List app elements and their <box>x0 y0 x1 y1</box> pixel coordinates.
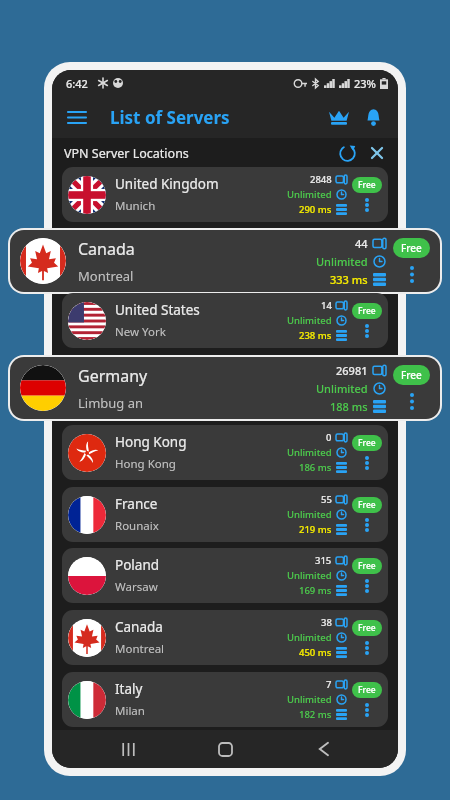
staticText: Germany <box>78 365 148 387</box>
staticText: Montreal <box>115 641 165 657</box>
staticText: Unlimited <box>287 314 332 327</box>
staticText: 38 <box>321 616 332 629</box>
button[interactable]: Home <box>203 730 247 768</box>
staticText: 238 ms <box>299 329 332 342</box>
staticText: Free <box>401 368 422 382</box>
staticText: 23% <box>354 76 376 91</box>
staticText: Free <box>358 499 376 511</box>
button[interactable]: Poland <box>62 548 388 603</box>
staticText: List of Servers <box>110 106 230 129</box>
staticText: United Kingdom <box>115 175 219 193</box>
staticText: Canada <box>115 618 163 636</box>
staticText: 333 ms <box>330 272 368 287</box>
staticText: Free <box>358 179 376 191</box>
staticText: Limbug an <box>78 394 144 412</box>
button[interactable]: More options <box>360 455 374 471</box>
staticText: New York <box>115 324 166 340</box>
button[interactable]: Germany <box>10 357 440 419</box>
staticText: 6:42 <box>66 76 88 91</box>
staticText: Munich <box>115 198 156 214</box>
staticText: Free <box>358 622 376 634</box>
staticText: Hong Kong <box>115 433 187 451</box>
staticText: 26981 <box>336 363 368 378</box>
staticText: Unlimited <box>316 254 368 269</box>
button[interactable]: More options <box>360 702 374 718</box>
staticText: Canada <box>78 238 135 260</box>
staticText: Unlimited <box>287 631 332 644</box>
staticText: 2848 <box>310 173 332 186</box>
button[interactable]: Premium <box>322 100 356 134</box>
staticText: Free <box>358 684 376 696</box>
button[interactable]: Hong Kong <box>62 425 388 480</box>
button[interactable]: Menu <box>60 100 94 134</box>
staticText: Free <box>358 560 376 572</box>
button[interactable]: Close <box>364 140 390 166</box>
staticText: France <box>115 495 158 513</box>
staticText: Poland <box>115 556 160 574</box>
staticText: Free <box>358 437 376 449</box>
staticText: 169 ms <box>299 584 332 597</box>
staticText: Hong Kong <box>115 456 176 472</box>
button[interactable]: More options <box>360 578 374 594</box>
button[interactable]: More options <box>360 517 374 533</box>
staticText: 450 ms <box>299 646 332 659</box>
staticText: Unlimited <box>287 569 332 582</box>
staticText: Warsaw <box>115 579 158 595</box>
staticText: 0 <box>326 431 332 444</box>
staticText: 44 <box>355 236 368 251</box>
staticText: 188 ms <box>330 399 368 414</box>
staticText: Milan <box>115 703 145 719</box>
button[interactable]: More options <box>360 640 374 656</box>
staticText: 7 <box>326 678 332 691</box>
button[interactable]: France <box>62 487 388 542</box>
staticText: Free <box>358 305 376 317</box>
staticText: 315 <box>315 554 332 567</box>
button[interactable]: United Kingdom <box>62 167 388 222</box>
button[interactable]: Canada <box>10 230 440 292</box>
button[interactable]: Back <box>301 730 345 768</box>
staticText: Unlimited <box>287 693 332 706</box>
staticText: Free <box>401 241 422 255</box>
button[interactable]: Italy <box>62 672 388 727</box>
button[interactable]: Refresh <box>334 140 360 166</box>
staticText: 14 <box>321 299 332 312</box>
staticText: Unlimited <box>316 381 368 396</box>
staticText: 219 ms <box>299 523 332 536</box>
button[interactable]: More options <box>360 197 374 213</box>
staticText: Unlimited <box>287 508 332 521</box>
staticText: Unlimited <box>287 446 332 459</box>
staticText: 182 ms <box>299 708 332 721</box>
staticText: VPN Server Locations <box>64 145 189 162</box>
button[interactable]: United States <box>62 293 388 348</box>
staticText: 55 <box>321 493 332 506</box>
staticText: United States <box>115 301 200 319</box>
staticText: 186 ms <box>299 461 332 474</box>
staticText: Montreal <box>78 267 134 285</box>
button[interactable]: Recents <box>106 730 150 768</box>
staticText: Unlimited <box>287 188 332 201</box>
button[interactable]: Canada <box>62 610 388 665</box>
staticText: 290 ms <box>299 203 332 216</box>
staticText: Italy <box>115 680 143 698</box>
button[interactable]: Notifications <box>356 100 390 134</box>
staticText: Rounaix <box>115 518 159 534</box>
button[interactable]: More options <box>360 323 374 339</box>
button[interactable]: More options <box>403 391 421 411</box>
button[interactable]: More options <box>403 264 421 284</box>
